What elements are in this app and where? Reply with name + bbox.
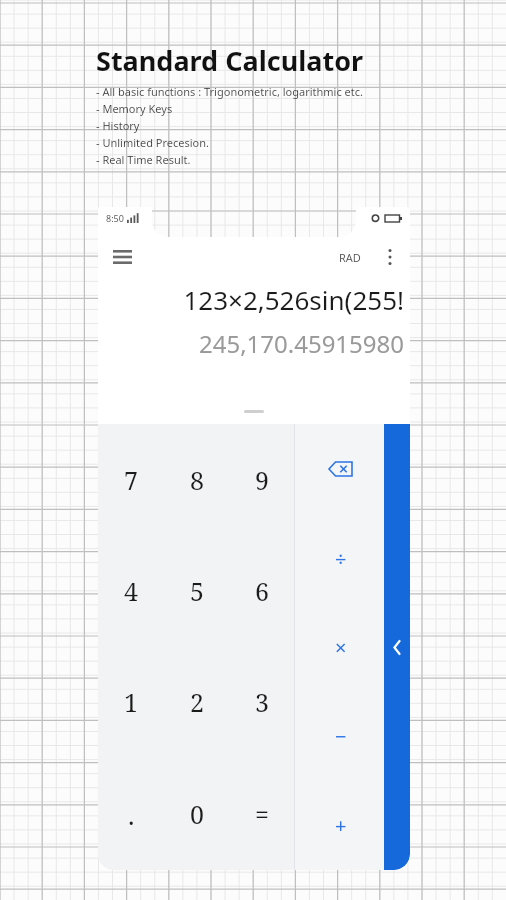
staticText: 5 bbox=[190, 574, 204, 608]
staticText: 123×2,526sin(255! bbox=[183, 282, 404, 317]
button[interactable]: + bbox=[295, 781, 410, 870]
staticText: 8 bbox=[190, 463, 204, 497]
button[interactable]: Open scientific panel bbox=[384, 424, 410, 870]
staticText: 1 bbox=[124, 685, 138, 719]
staticText: 7 bbox=[124, 463, 138, 497]
button[interactable]: . bbox=[98, 758, 164, 870]
staticText: - Real Time Result. bbox=[96, 152, 191, 167]
staticText: + bbox=[335, 812, 347, 839]
staticText: - All basic functions : Trigonometric, l… bbox=[96, 84, 364, 99]
staticText: = bbox=[255, 797, 269, 831]
button[interactable]: ÷ bbox=[295, 514, 410, 603]
staticText: 8:50 bbox=[106, 212, 124, 224]
button[interactable]: Backspace bbox=[295, 424, 410, 514]
staticText: . bbox=[128, 797, 135, 832]
button[interactable]: = bbox=[229, 758, 294, 870]
button[interactable]: 9 bbox=[229, 424, 294, 535]
staticText: 2 bbox=[190, 685, 204, 719]
button[interactable]: × bbox=[295, 603, 410, 692]
staticText: − bbox=[335, 723, 347, 750]
button[interactable]: 4 bbox=[98, 535, 164, 646]
button[interactable]: 8 bbox=[164, 424, 229, 535]
staticText: 4 bbox=[124, 574, 138, 608]
button[interactable]: 7 bbox=[98, 424, 164, 535]
staticText: 245,170.45915980 bbox=[198, 327, 404, 360]
staticText: RAD bbox=[339, 250, 361, 265]
staticText: 3 bbox=[255, 685, 269, 719]
button[interactable]: More options bbox=[377, 244, 403, 270]
staticText: ÷ bbox=[335, 545, 347, 572]
button[interactable]: 1 bbox=[98, 646, 164, 758]
staticText: 0 bbox=[190, 797, 204, 831]
staticText: × bbox=[335, 634, 347, 661]
button[interactable]: − bbox=[295, 692, 410, 781]
staticText: Standard Calculator bbox=[96, 42, 364, 79]
button[interactable]: 0 bbox=[164, 758, 229, 870]
staticText: 9 bbox=[255, 463, 269, 497]
staticText: - Memory Keys bbox=[96, 101, 173, 116]
staticText: 6 bbox=[255, 574, 269, 608]
button[interactable]: 6 bbox=[229, 535, 294, 646]
staticText: - Unlimited Precesion. bbox=[96, 135, 210, 150]
button[interactable]: 2 bbox=[164, 646, 229, 758]
staticText: - History bbox=[96, 118, 140, 133]
button[interactable]: Menu bbox=[107, 242, 137, 272]
button[interactable]: RAD bbox=[333, 246, 367, 269]
button[interactable]: 5 bbox=[164, 535, 229, 646]
button[interactable]: 3 bbox=[229, 646, 294, 758]
